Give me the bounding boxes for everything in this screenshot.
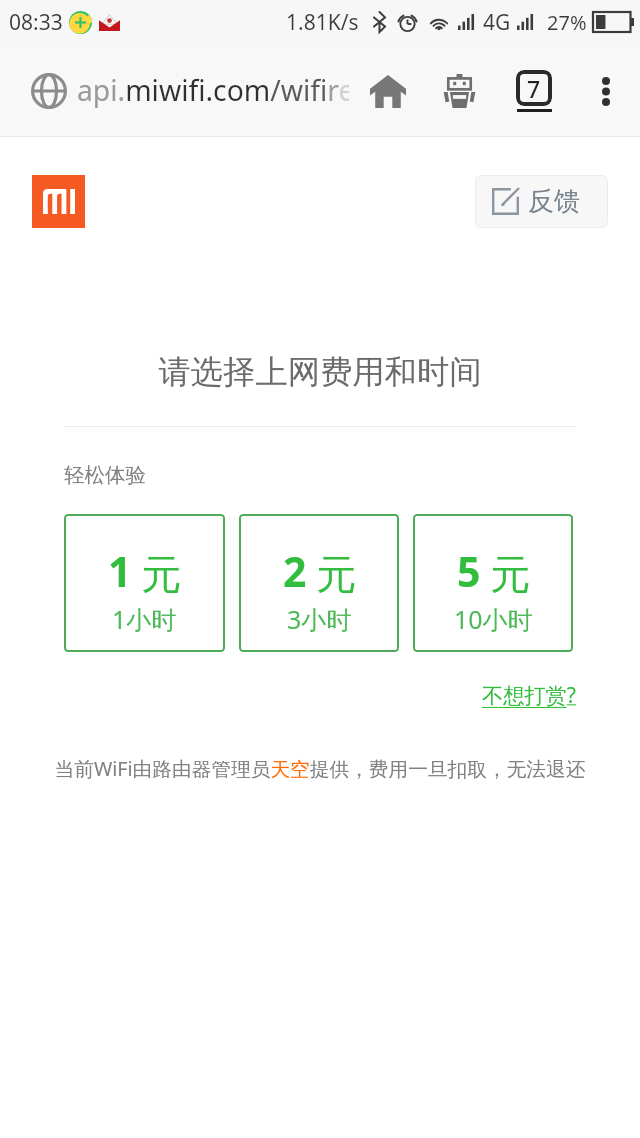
staticText: api.miwifi.com/wifire bbox=[77, 71, 349, 110]
staticText: 2 bbox=[283, 543, 307, 599]
staticText: 当前WiFi由路由器管理员天空提供，费用一旦扣取，无法退还 bbox=[0, 755, 640, 782]
staticText: 元 bbox=[316, 549, 356, 599]
staticText: 轻松体验 bbox=[64, 462, 146, 488]
button[interactable]: Mi logo bbox=[32, 175, 85, 228]
staticText: 不想打赏? bbox=[482, 680, 576, 709]
staticText: 4G bbox=[483, 8, 511, 37]
staticText: 元 bbox=[490, 549, 530, 599]
staticText: 反馈 bbox=[528, 185, 580, 218]
button[interactable]: Tabs, 7 open bbox=[503, 60, 565, 122]
button[interactable]: Assistant bbox=[428, 60, 490, 122]
staticText: 7 bbox=[527, 73, 541, 104]
button[interactable]: 5 bbox=[413, 514, 573, 652]
staticText: 5 bbox=[457, 543, 481, 599]
staticText: 1小时 bbox=[112, 602, 177, 636]
button[interactable]: 2 bbox=[239, 514, 399, 652]
staticText: 1.81K/s bbox=[286, 8, 359, 37]
staticText: 1 bbox=[108, 543, 132, 599]
button[interactable]: Address bar, api.miwifi.com/wifire bbox=[0, 44, 350, 137]
button[interactable]: More options bbox=[580, 65, 632, 117]
staticText: 08:33 bbox=[9, 8, 63, 37]
button[interactable]: 不想打赏? bbox=[482, 680, 576, 709]
staticText: 3小时 bbox=[287, 602, 352, 636]
staticText: 元 bbox=[141, 549, 181, 599]
button[interactable]: 反馈 bbox=[475, 175, 608, 228]
staticText: 27% bbox=[547, 9, 587, 36]
staticText: 请选择上网费用和时间 bbox=[0, 352, 640, 393]
button[interactable]: 1 bbox=[64, 514, 225, 652]
button[interactable]: Home bbox=[357, 60, 419, 122]
staticText: 10小时 bbox=[454, 602, 533, 636]
